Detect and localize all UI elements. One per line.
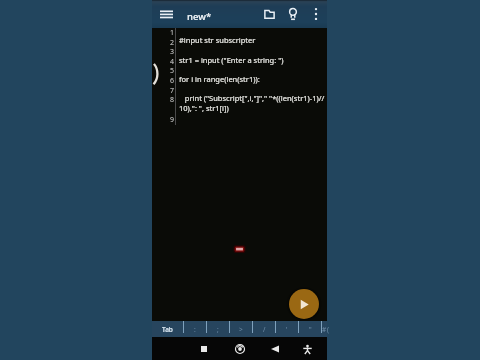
staticText: new* [187, 10, 212, 23]
staticText: str1 = input ("Enter a string: ") [179, 55, 284, 65]
button[interactable]: Navigation menu [155, 3, 177, 25]
button[interactable]: Recent apps [194, 339, 214, 359]
staticText: 10),": ", str1[i]) [179, 103, 229, 113]
button[interactable]: " [299, 321, 321, 337]
staticText: 9 [170, 115, 175, 125]
button[interactable]: Run [289, 289, 319, 319]
staticText: 5 [170, 66, 175, 76]
staticText: 2 [170, 38, 175, 48]
button[interactable]: Accessibility [297, 339, 317, 359]
button[interactable]: / [253, 321, 275, 337]
button[interactable]: More options [304, 3, 327, 25]
staticText: 8 [170, 95, 175, 105]
staticText: ; [217, 325, 219, 334]
staticText: for i in range(len(str1)): [179, 74, 260, 84]
button[interactable]: > [230, 321, 252, 337]
staticText: 7 [170, 86, 175, 96]
button[interactable]: ; [207, 321, 229, 337]
button[interactable]: Open file [255, 3, 280, 25]
staticText: " [309, 325, 312, 334]
button[interactable]: Hint [280, 3, 304, 25]
button[interactable]: Home [230, 339, 250, 359]
staticText: Tab [162, 325, 173, 334]
staticText: : [194, 325, 196, 334]
staticText: 4 [170, 57, 175, 67]
staticText: # [322, 325, 327, 334]
staticText: 1 [170, 28, 175, 38]
button[interactable]: Tab [152, 321, 183, 337]
staticText: 3 [170, 47, 175, 57]
button[interactable]: # [322, 321, 327, 337]
staticText: ' [286, 325, 288, 334]
button[interactable]: Back [265, 339, 285, 359]
staticText: 6 [170, 76, 175, 86]
staticText: #input str subscripter [179, 35, 256, 45]
staticText: > [239, 325, 243, 334]
staticText: print ("Subscript[",i,"]"," "*((len(str1… [179, 93, 325, 103]
staticText: / [263, 325, 266, 334]
